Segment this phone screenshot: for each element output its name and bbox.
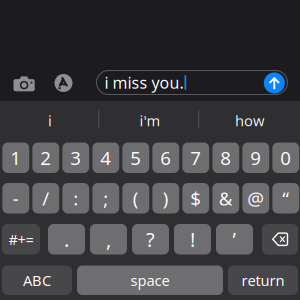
staticText: ? xyxy=(146,226,155,253)
staticText: . xyxy=(64,226,69,253)
button[interactable]: 7 xyxy=(182,142,209,173)
staticText: , xyxy=(106,226,111,253)
button[interactable]: 6 xyxy=(152,142,179,173)
staticText: 8 xyxy=(220,145,231,170)
staticText: $ xyxy=(190,186,201,211)
staticText: 3 xyxy=(70,145,81,170)
button[interactable]: 5 xyxy=(122,142,149,173)
staticText: ( xyxy=(133,186,139,211)
button[interactable]: ! xyxy=(174,224,211,254)
button[interactable]: @ xyxy=(242,183,269,213)
button[interactable]: Camera xyxy=(13,75,35,91)
staticText: 5 xyxy=(130,145,141,170)
button[interactable]: ) xyxy=(152,183,179,213)
button[interactable]: ? xyxy=(132,224,169,254)
staticText: 2 xyxy=(40,145,51,170)
staticText: & xyxy=(219,186,233,211)
button[interactable]: & xyxy=(212,183,239,213)
button[interactable]: . xyxy=(48,224,85,254)
button[interactable]: ABC xyxy=(2,265,72,295)
staticText: : xyxy=(73,186,78,211)
button[interactable]: App Store xyxy=(54,74,72,92)
button[interactable]: ; xyxy=(92,183,119,213)
staticText: i xyxy=(48,111,52,130)
staticText: space xyxy=(130,270,169,290)
button[interactable]: Delete xyxy=(262,224,298,254)
button[interactable]: how xyxy=(200,103,300,138)
button[interactable]: $ xyxy=(182,183,209,213)
button[interactable]: i xyxy=(0,103,100,138)
staticText: 4 xyxy=(100,145,111,170)
button[interactable]: 3 xyxy=(62,142,89,173)
staticText: ABC xyxy=(23,270,51,290)
button[interactable]: 0 xyxy=(272,142,299,173)
staticText: #+= xyxy=(8,229,33,249)
staticText: / xyxy=(42,186,49,211)
staticText: return xyxy=(241,270,284,290)
staticText: i miss you. xyxy=(104,72,183,93)
button[interactable]: 8 xyxy=(212,142,239,173)
staticText: 1 xyxy=(10,145,21,170)
staticText: ! xyxy=(190,226,195,253)
button[interactable]: 9 xyxy=(242,142,269,173)
button[interactable]: 4 xyxy=(92,142,119,173)
staticText: - xyxy=(13,186,19,211)
button[interactable]: Send xyxy=(264,72,285,93)
staticText: 9 xyxy=(250,145,261,170)
button[interactable]: i'm xyxy=(100,103,200,138)
button[interactable]: , xyxy=(90,224,127,254)
button[interactable]: 1 xyxy=(2,142,29,173)
button[interactable]: “ xyxy=(272,183,299,213)
button[interactable]: space xyxy=(77,265,223,295)
staticText: ; xyxy=(103,186,108,211)
button[interactable]: : xyxy=(62,183,89,213)
staticText: 0 xyxy=(280,145,291,170)
staticText: @ xyxy=(247,186,264,211)
staticText: “ xyxy=(282,186,289,211)
button[interactable]: #+= xyxy=(2,224,40,254)
staticText: ’ xyxy=(232,226,236,253)
staticText: i'm xyxy=(139,111,160,130)
button[interactable]: 2 xyxy=(32,142,59,173)
button[interactable]: ( xyxy=(122,183,149,213)
button[interactable]: return xyxy=(228,265,298,295)
button[interactable]: / xyxy=(32,183,59,213)
staticText: how xyxy=(235,111,265,130)
staticText: 7 xyxy=(190,145,201,170)
button[interactable]: ’ xyxy=(216,224,253,254)
staticText: ) xyxy=(163,186,169,211)
staticText: 6 xyxy=(160,145,171,170)
button[interactable]: - xyxy=(2,183,29,213)
